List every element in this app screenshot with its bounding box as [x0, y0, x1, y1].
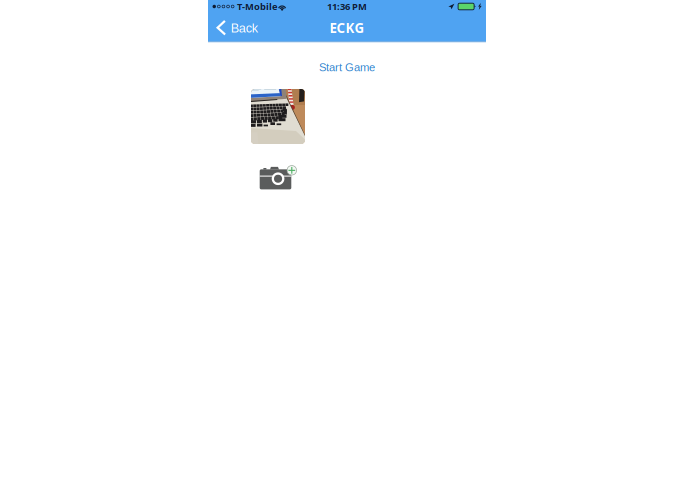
staticText: T-Mobile: [237, 0, 278, 13]
staticText: 11:36 PM: [327, 0, 367, 13]
staticText: Back: [231, 21, 258, 35]
button[interactable]: Add photo: [260, 167, 297, 190]
button[interactable]: Start Game: [313, 58, 381, 76]
staticText: ECKG: [329, 19, 364, 37]
button[interactable]: Back: [208, 14, 264, 40]
staticText: Start Game: [319, 61, 375, 73]
